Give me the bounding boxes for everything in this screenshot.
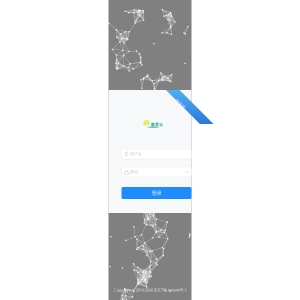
- staticText: Copyright © 2014-2024 京ICP备XXXXXX号-1: [113, 287, 186, 293]
- staticText: 学生端: [174, 101, 186, 106]
- staticText: 用户名: [130, 151, 142, 156]
- staticText: 教育云: [151, 122, 163, 127]
- button[interactable]: 用户名: [121, 149, 191, 159]
- staticText: 密码: [130, 169, 138, 174]
- button[interactable]: 登录: [121, 187, 191, 199]
- button[interactable]: 密码: [121, 167, 191, 177]
- staticText: 登录: [151, 190, 161, 196]
